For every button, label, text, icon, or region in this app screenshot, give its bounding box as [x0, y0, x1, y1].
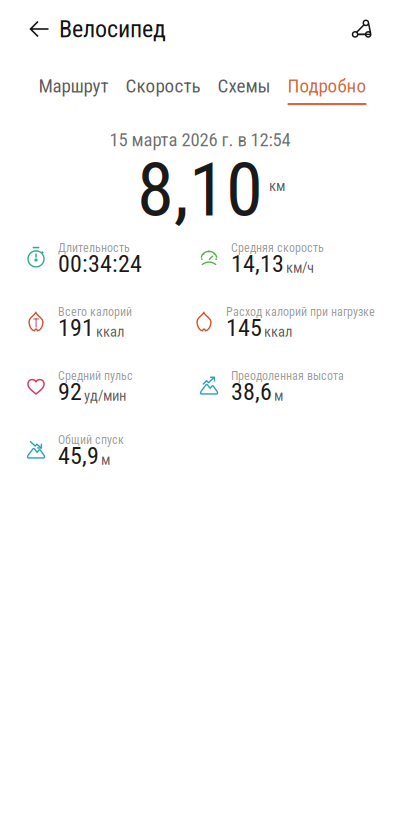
staticText: 14,13	[231, 250, 284, 278]
staticText: Велосипед	[59, 15, 166, 43]
staticText: км/ч	[286, 259, 314, 276]
staticText: 15 марта 2026 г. в 12:54	[109, 129, 290, 151]
staticText: Скорость	[125, 75, 200, 97]
staticText: 92	[58, 378, 82, 406]
staticText: Общий спуск	[58, 433, 124, 447]
staticText: Преодоленная высота	[231, 369, 344, 383]
staticText: 00:34:24	[58, 250, 142, 278]
staticText: 38,6	[231, 378, 272, 406]
staticText: Схемы	[217, 75, 270, 97]
staticText: 145	[226, 314, 262, 342]
staticText: ккал	[264, 323, 292, 340]
button[interactable]: Back	[17, 5, 61, 53]
staticText: уд/мин	[84, 387, 126, 404]
staticText: Средний пульс	[58, 369, 133, 383]
staticText: T	[33, 316, 39, 330]
staticText: 191	[58, 314, 94, 342]
staticText: м	[101, 451, 110, 468]
staticText: Расход калорий при нагрузке	[226, 305, 375, 319]
staticText: Всего калорий	[58, 305, 132, 319]
button[interactable]: Схемы	[209, 76, 279, 108]
button[interactable]: Подробно	[279, 76, 375, 108]
button[interactable]: Скорость	[117, 76, 209, 108]
staticText: Длительность	[58, 241, 130, 255]
button[interactable]: Маршрут	[30, 76, 117, 108]
staticText: Маршрут	[38, 75, 108, 97]
staticText: км	[269, 177, 285, 194]
staticText: 8,10	[137, 146, 263, 234]
staticText: Средняя скорость	[231, 241, 324, 255]
staticText: Подробно	[287, 75, 366, 97]
staticText: м	[274, 387, 283, 404]
staticText: ккал	[96, 323, 124, 340]
button[interactable]: Share	[340, 5, 384, 53]
staticText: 45,9	[58, 442, 99, 470]
